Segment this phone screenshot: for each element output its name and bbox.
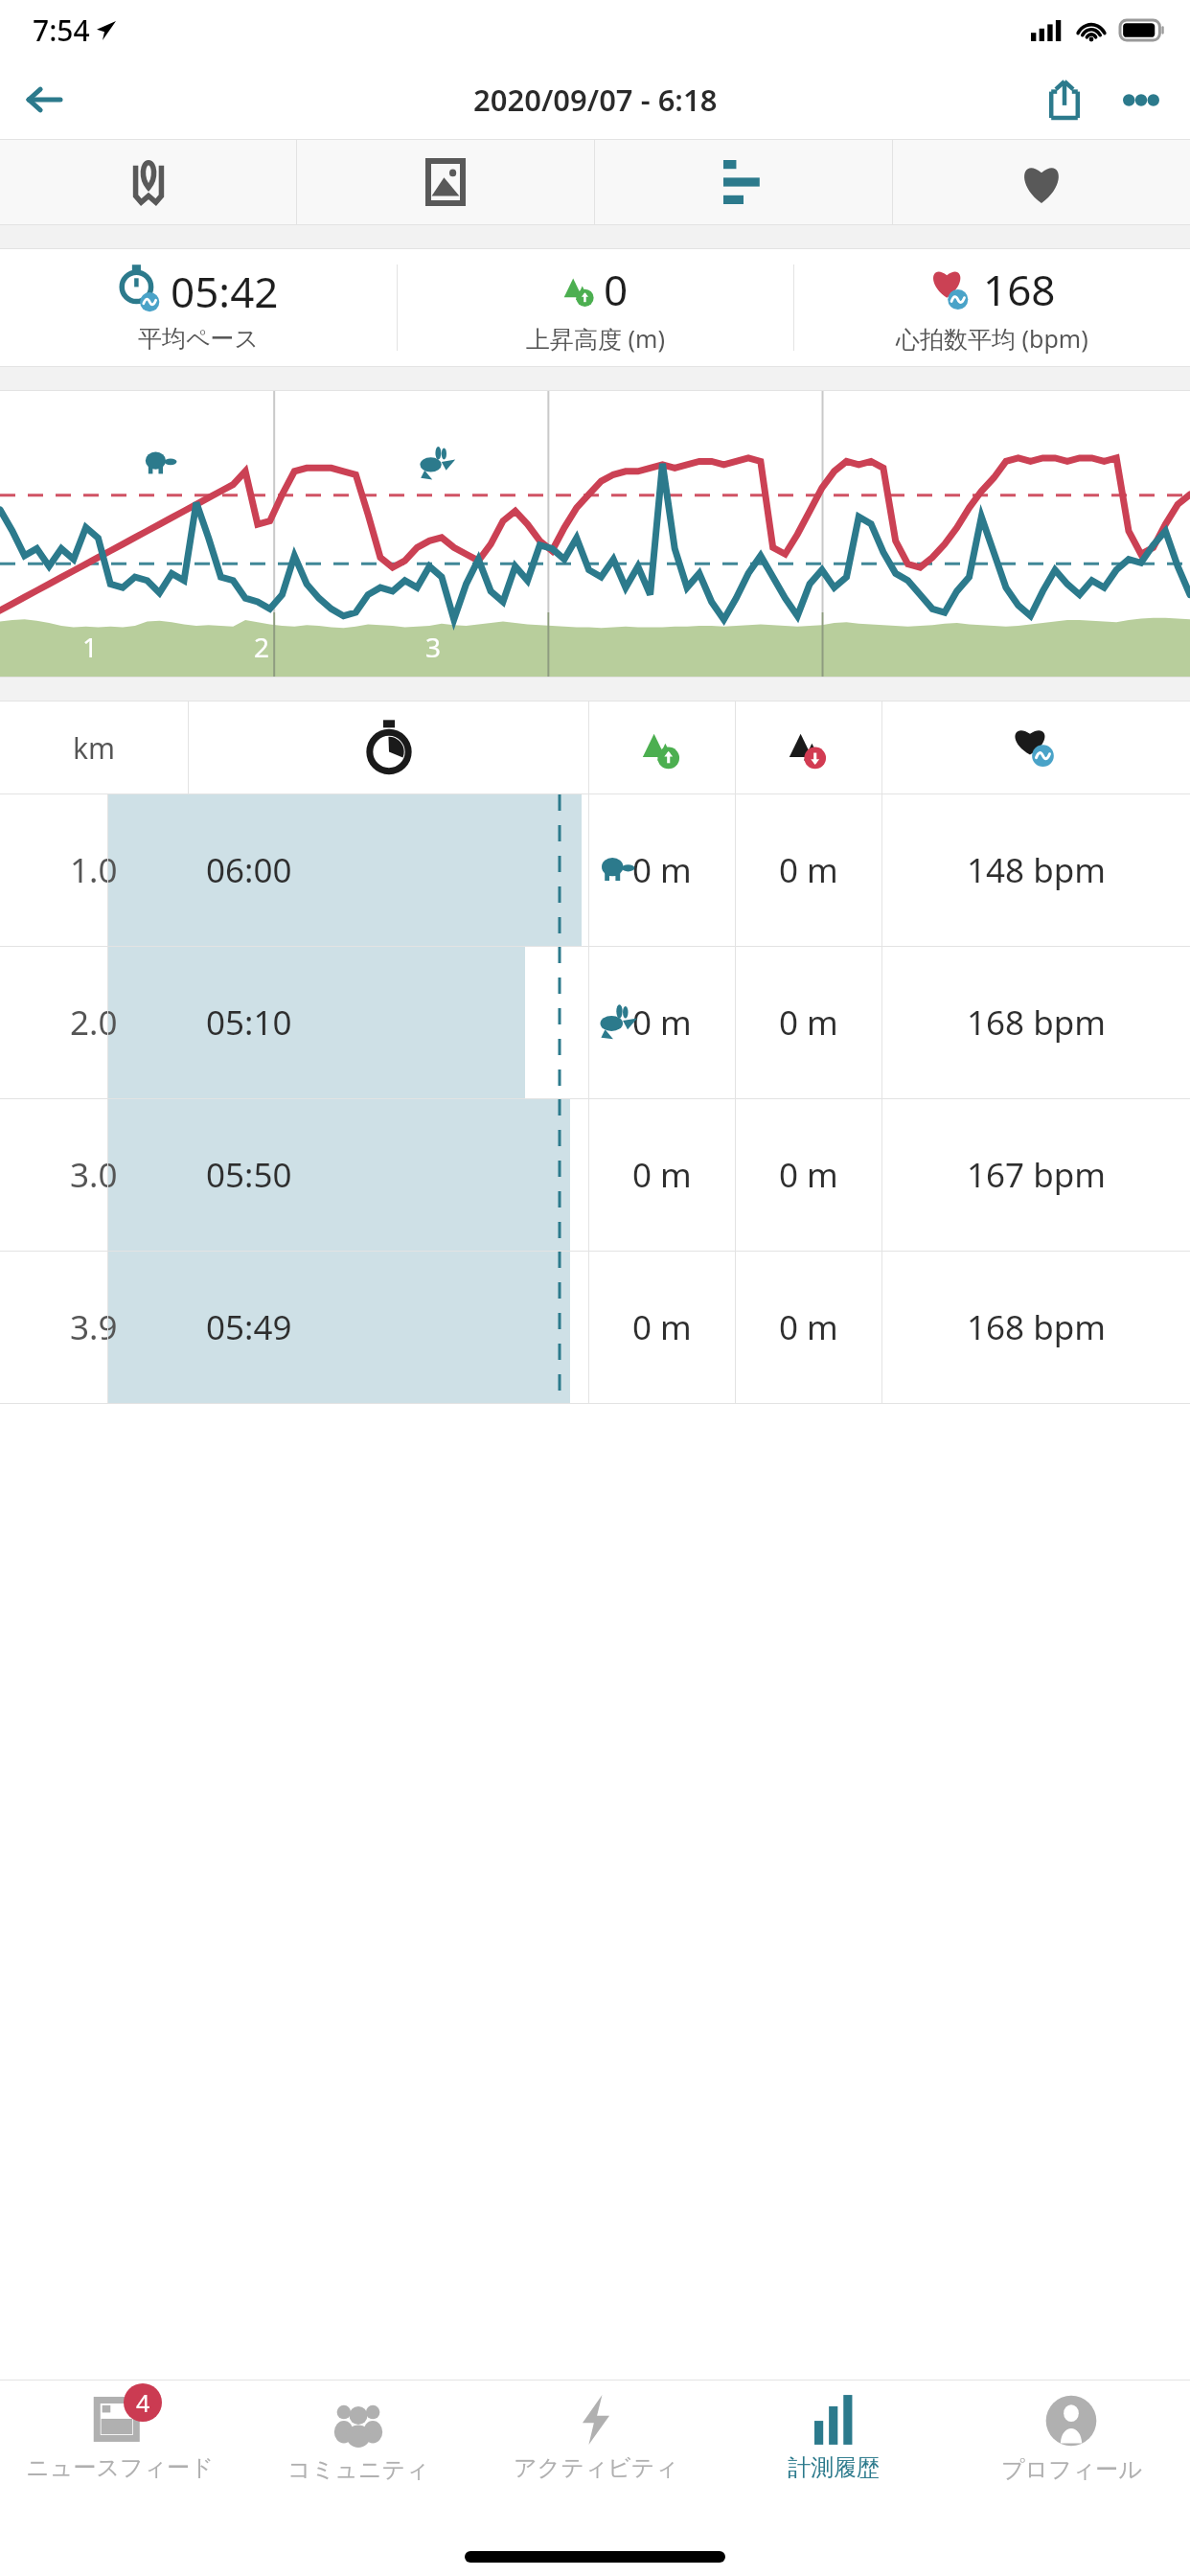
- button[interactable]: アクティビティ: [477, 2380, 715, 2515]
- staticText: 1.0: [70, 847, 118, 893]
- staticText: 168 bpm: [967, 1000, 1106, 1046]
- staticText: 心拍数平均 (bpm): [896, 322, 1088, 355]
- button[interactable]: 05:42: [0, 249, 397, 366]
- button[interactable]: More options: [1110, 68, 1173, 131]
- staticText: 平均ペース: [138, 324, 260, 354]
- staticText: アクティビティ: [514, 2453, 678, 2482]
- staticText: 3.9: [70, 1304, 118, 1350]
- staticText: コミュニティ: [287, 2455, 429, 2484]
- staticText: プロフィール: [1001, 2455, 1142, 2484]
- button[interactable]: Share: [1033, 68, 1096, 131]
- staticText: 計測履歴: [788, 2453, 880, 2482]
- button[interactable]: コミュニティ: [239, 2380, 477, 2515]
- staticText: 0 m: [779, 1152, 838, 1198]
- staticText: 06:00: [206, 847, 292, 893]
- button[interactable]: Heart rate: [893, 140, 1190, 224]
- staticText: 7:54: [33, 11, 90, 50]
- staticText: 168: [983, 261, 1056, 318]
- staticText: 2020/09/07 - 6:18: [473, 80, 718, 120]
- staticText: 05:10: [206, 1000, 292, 1046]
- button[interactable]: 計測履歴: [715, 2380, 952, 2515]
- button[interactable]: Back: [13, 70, 73, 129]
- staticText: 3: [425, 629, 442, 665]
- staticText: 4: [136, 2386, 150, 2419]
- button[interactable]: 2.0: [0, 947, 1190, 1098]
- staticText: 0 m: [779, 1304, 838, 1350]
- button[interactable]: 3.9: [0, 1252, 1190, 1403]
- staticText: 2: [254, 629, 270, 665]
- button[interactable]: Photos: [297, 140, 594, 224]
- staticText: 05:42: [171, 263, 279, 320]
- button[interactable]: プロフィール: [952, 2380, 1190, 2515]
- button[interactable]: 168: [794, 249, 1190, 366]
- button[interactable]: 4: [0, 2380, 239, 2515]
- staticText: 3.0: [70, 1152, 118, 1198]
- staticText: 0 m: [632, 1000, 692, 1046]
- button[interactable]: Charts: [595, 140, 892, 224]
- staticText: 0 m: [632, 1304, 692, 1350]
- staticText: 0 m: [779, 1000, 838, 1046]
- staticText: 0 m: [632, 847, 692, 893]
- staticText: 上昇高度 (m): [526, 322, 665, 355]
- staticText: 0: [604, 261, 629, 318]
- button[interactable]: 1.0: [0, 794, 1190, 946]
- staticText: 168 bpm: [967, 1304, 1106, 1350]
- staticText: 1: [82, 629, 99, 665]
- staticText: 05:50: [206, 1152, 292, 1198]
- staticText: km: [73, 728, 116, 768]
- button[interactable]: 3.0: [0, 1099, 1190, 1251]
- staticText: 2.0: [70, 1000, 118, 1046]
- button[interactable]: 0: [398, 249, 793, 366]
- staticText: 167 bpm: [967, 1152, 1106, 1198]
- staticText: 0 m: [779, 847, 838, 893]
- staticText: 148 bpm: [967, 847, 1106, 893]
- staticText: 0 m: [632, 1152, 692, 1198]
- staticText: ニュースフィード: [26, 2453, 214, 2482]
- button[interactable]: 1: [0, 391, 1190, 677]
- button[interactable]: Map: [0, 140, 296, 224]
- staticText: 05:49: [206, 1304, 292, 1350]
